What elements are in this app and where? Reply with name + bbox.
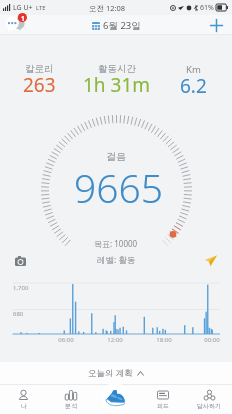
button[interactable]: Camera [10,251,31,271]
staticText: 나 [21,402,27,410]
staticText: 피드 [157,402,169,410]
staticText: 00:00 [204,336,220,344]
staticText: 1h 31m [83,72,151,93]
staticText: 6월 23일 [103,19,141,32]
button[interactable]: 칼로리 [0,63,78,96]
staticText: 18:00 [156,336,172,344]
staticText: 6.2 [180,73,207,93]
staticText: 1 [21,14,25,23]
staticText: 9665 [74,161,164,214]
staticText: 오늘의 계획 [88,367,133,379]
button[interactable]: 오늘의 계획 [0,362,232,384]
button[interactable]: Send [201,250,221,270]
staticText: 61% [200,3,214,13]
button[interactable]: 답사하기 [186,385,232,414]
staticText: 목표: 10000 [94,238,138,249]
button[interactable]: Activity [94,385,140,414]
staticText: 레벨: 활동 [97,254,136,266]
staticText: 칼로리 [25,63,54,75]
button[interactable]: 활동시간 [78,63,155,96]
staticText: 263 [23,72,56,93]
staticText: Km [186,63,201,76]
staticText: 활동시간 [98,63,136,75]
staticText: 답사하기 [197,402,221,410]
staticText: 분석 [65,402,77,410]
button[interactable]: Add [205,14,227,36]
staticText: LTE [36,4,46,12]
button[interactable]: 분석 [47,385,94,414]
staticText: 걸음 [106,150,126,163]
staticText: 680 [13,310,24,318]
button[interactable]: Messages [0,10,30,40]
staticText: 12:00 [107,336,123,344]
button[interactable]: Km [155,63,232,96]
button[interactable]: 나 [0,385,47,414]
staticText: 1,700 [13,284,29,292]
staticText: 오전 12:08 [89,3,126,13]
button[interactable]: 6월 23일 [92,19,141,32]
staticText: 06:00 [58,336,74,344]
button[interactable]: 피드 [140,385,186,414]
button[interactable]: Activity [101,383,129,411]
staticText: LG U+ [13,3,33,13]
